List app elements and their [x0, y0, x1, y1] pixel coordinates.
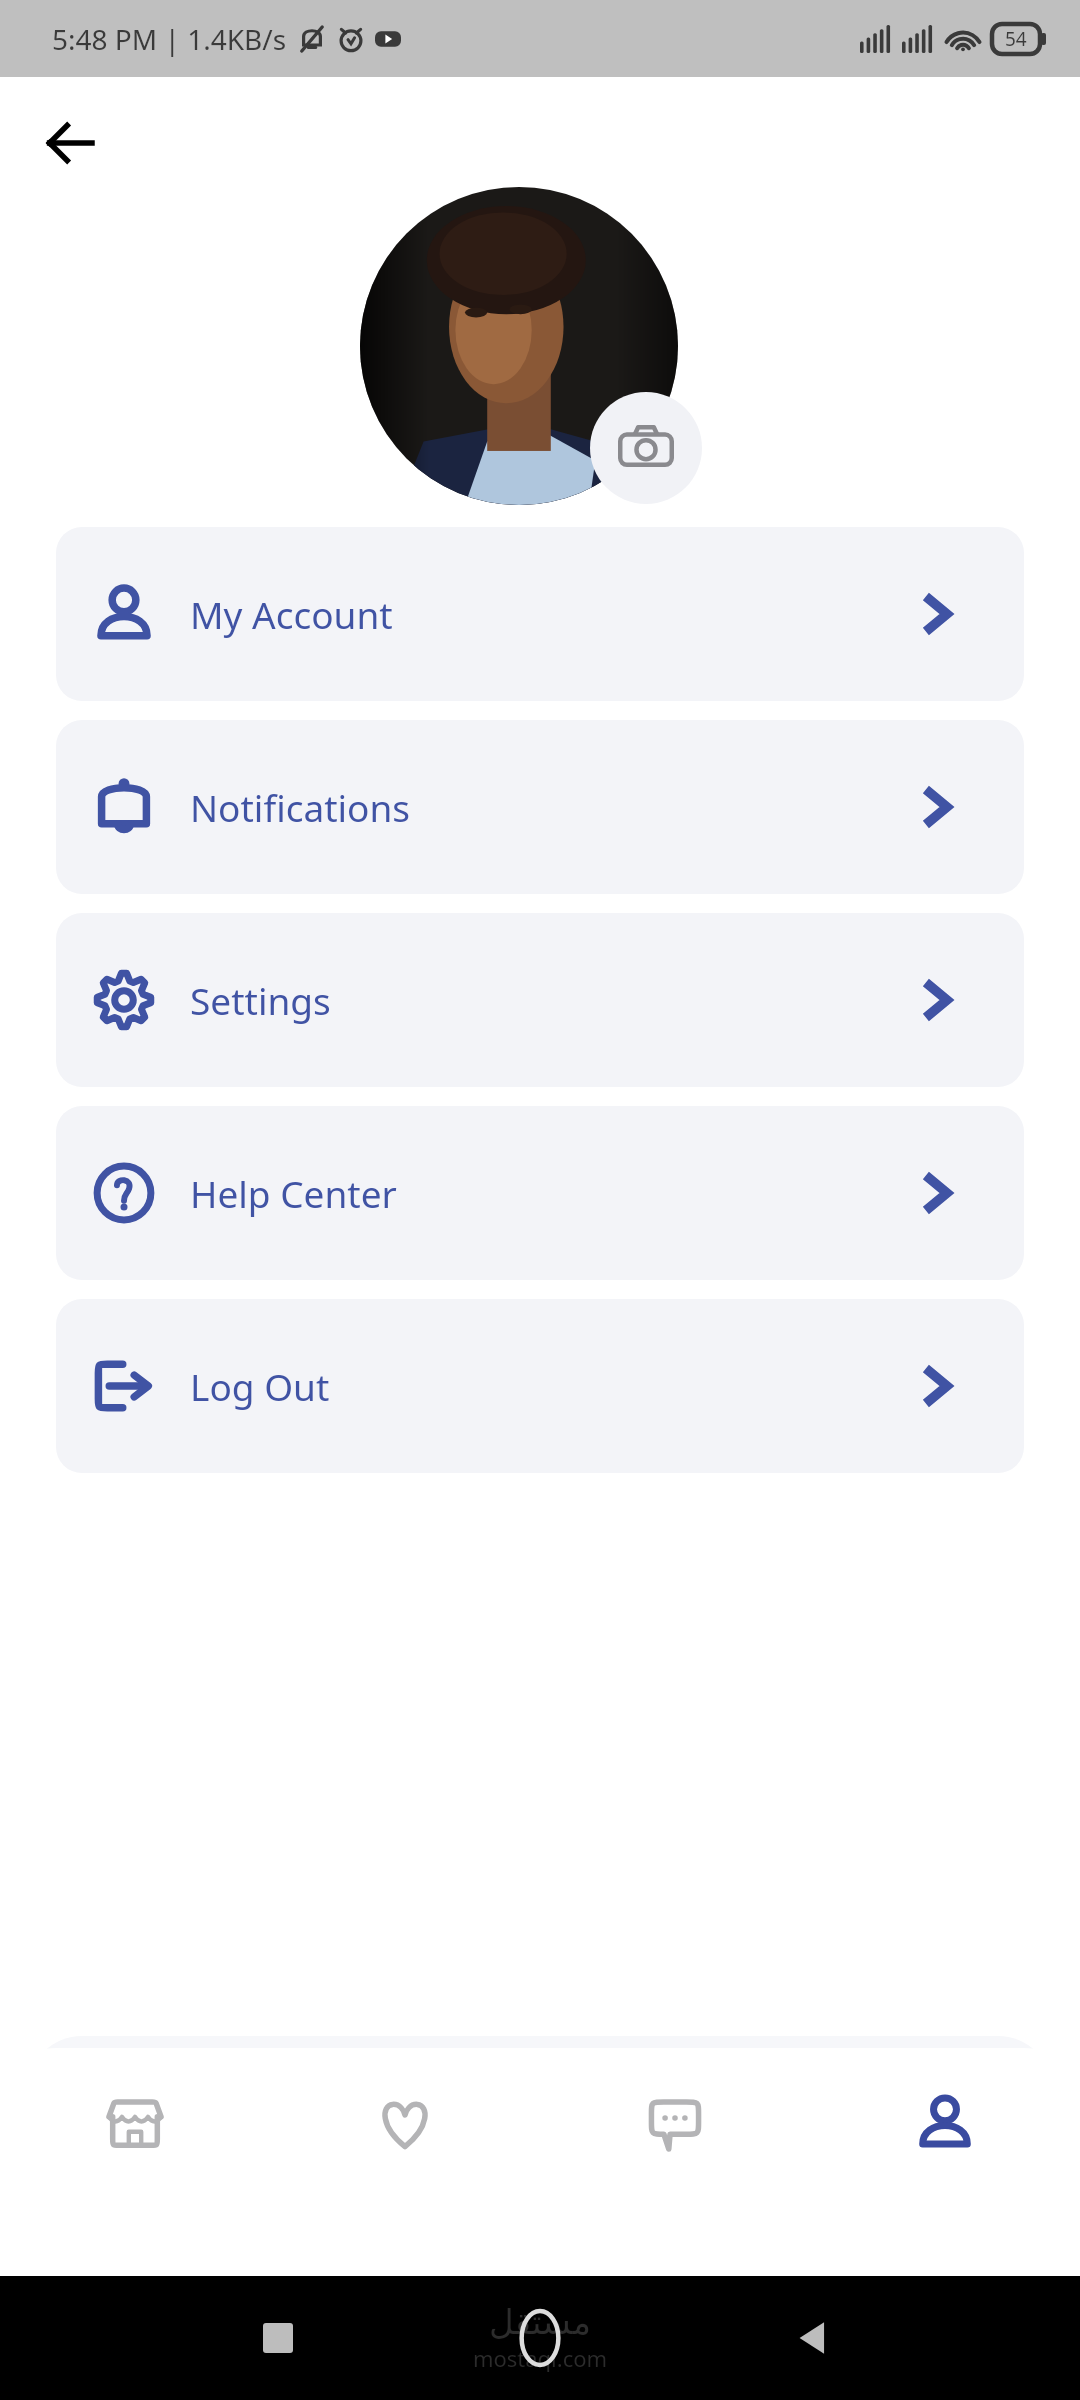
button[interactable]: Notifications	[56, 720, 1024, 894]
button[interactable]: Favorites	[270, 2048, 540, 2198]
staticText: Log Out	[190, 1361, 330, 1411]
button[interactable]: Settings	[56, 913, 1024, 1087]
staticText: My Account	[190, 589, 393, 639]
button[interactable]: Profile	[810, 2048, 1080, 2198]
staticText: مستقل	[0, 2302, 1080, 2342]
button[interactable]: Recents	[255, 2315, 301, 2361]
staticText: Notifications	[190, 782, 411, 832]
button[interactable]: Back	[36, 103, 116, 183]
button[interactable]: Home	[510, 2308, 570, 2368]
button[interactable]: My Account	[56, 527, 1024, 701]
button[interactable]: Help Center	[56, 1106, 1024, 1280]
button[interactable]: Change photo	[590, 392, 702, 504]
button[interactable]: Profile photo	[360, 187, 678, 505]
button[interactable]: Messages	[540, 2048, 810, 2198]
staticText: Help Center	[190, 1168, 397, 1218]
staticText: 54	[1005, 26, 1027, 52]
button[interactable]: Log Out	[56, 1299, 1024, 1473]
button[interactable]: Back	[788, 2312, 840, 2364]
staticText: mostaql.com	[0, 2343, 1080, 2373]
staticText: 5:48 PM | 1.4KB/s	[52, 20, 287, 58]
staticText: Settings	[190, 975, 331, 1025]
button[interactable]: Store	[0, 2048, 270, 2198]
